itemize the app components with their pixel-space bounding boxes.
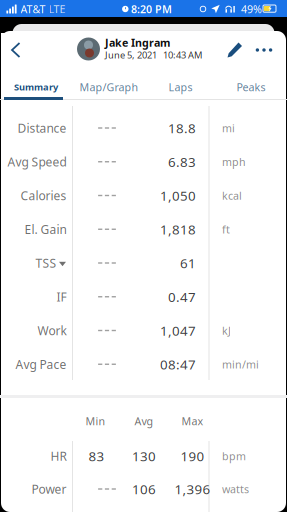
staticText: 18.8 xyxy=(168,119,196,137)
staticText: El. Gain xyxy=(24,221,66,237)
staticText: Power xyxy=(31,481,66,497)
staticText: 6.83 xyxy=(168,153,196,171)
staticText: Summary xyxy=(14,81,58,93)
staticText: June 5, 2021 10:43 AM xyxy=(105,49,202,61)
staticText: AT&T xyxy=(20,2,45,16)
staticText: Avg xyxy=(134,414,153,428)
staticText: Calories xyxy=(20,187,66,203)
staticText: Laps xyxy=(168,80,192,94)
button[interactable]: More options xyxy=(249,36,279,64)
staticText: IF xyxy=(56,289,66,305)
staticText: 1,047 xyxy=(160,322,196,339)
staticText: 1,050 xyxy=(160,187,196,204)
staticText: mi xyxy=(222,121,235,135)
staticText: mph xyxy=(222,155,246,169)
staticText: Map/Graph xyxy=(79,80,138,94)
staticText: Max xyxy=(181,414,203,428)
staticText: 61 xyxy=(180,254,196,272)
staticText: Jake Ingram xyxy=(105,35,170,50)
staticText: LTE xyxy=(48,2,65,16)
staticText: 8:20 PM xyxy=(131,2,172,16)
staticText: TSS xyxy=(35,255,56,271)
staticText: Avg Pace xyxy=(15,356,66,372)
button[interactable]: Laps xyxy=(145,75,216,99)
staticText: 106 xyxy=(132,480,156,498)
staticText: HR xyxy=(50,448,66,464)
staticText: 130 xyxy=(132,447,156,465)
button[interactable]: Map/Graph xyxy=(73,75,144,99)
staticText: ft xyxy=(222,222,230,236)
staticText: Work xyxy=(37,322,66,338)
staticText: Distance xyxy=(17,120,66,136)
staticText: 49% xyxy=(241,2,262,16)
button[interactable]: Edit xyxy=(220,34,250,66)
button[interactable]: Back xyxy=(1,33,31,67)
staticText: 1,396 xyxy=(174,480,210,498)
staticText: min/mi xyxy=(222,357,259,371)
staticText: kcal xyxy=(222,188,242,203)
staticText: bpm xyxy=(222,449,246,463)
staticText: 08:47 xyxy=(160,355,196,373)
staticText: Avg Speed xyxy=(7,154,66,170)
staticText: Peaks xyxy=(236,80,265,94)
staticText: Min xyxy=(85,414,105,428)
staticText: 1,818 xyxy=(160,220,196,238)
button[interactable]: Summary xyxy=(0,75,71,99)
staticText: kJ xyxy=(222,323,231,338)
staticText: 0.47 xyxy=(168,288,196,306)
button[interactable]: Peaks xyxy=(215,75,286,99)
staticText: 190 xyxy=(180,447,204,465)
staticText: watts xyxy=(222,482,249,496)
staticText: 83 xyxy=(88,447,104,465)
